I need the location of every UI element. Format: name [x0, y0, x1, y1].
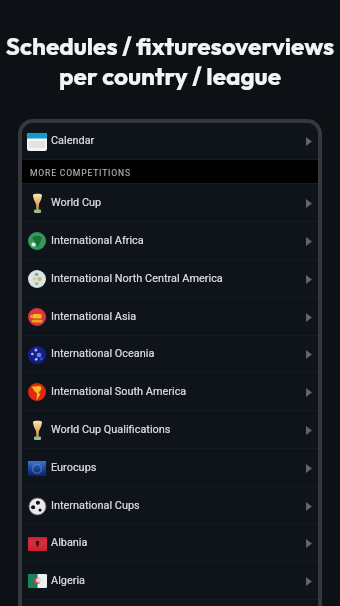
button[interactable]: Albania	[22, 525, 318, 562]
staticText: Algeria	[51, 574, 86, 587]
staticText: International Oceania	[51, 347, 155, 360]
button[interactable]: International Africa	[22, 222, 318, 260]
staticText: World Cup Qualifications	[51, 423, 171, 436]
staticText: Calendar	[51, 134, 95, 147]
staticText: International Cups	[51, 499, 140, 512]
button[interactable]: International Cups	[22, 487, 318, 525]
staticText: Eurocups	[51, 461, 97, 474]
staticText: International North Central America	[51, 272, 223, 285]
button[interactable]: Calendar	[22, 123, 318, 160]
staticText: International Africa	[51, 234, 144, 247]
button[interactable]: International Asia	[22, 298, 318, 336]
button[interactable]: International North Central America	[22, 260, 318, 298]
button[interactable]: World Cup	[22, 184, 318, 222]
staticText: Albania	[51, 536, 88, 549]
staticText: World Cup	[51, 196, 102, 209]
button[interactable]: International Oceania	[22, 336, 318, 373]
staticText: Schedules / fixturesoverviews per countr…	[0, 31, 340, 91]
button[interactable]: International South America	[22, 373, 318, 411]
staticText: International Asia	[51, 310, 137, 323]
staticText: MORE COMPETITIONS	[30, 168, 131, 178]
button[interactable]: World Cup Qualifications	[22, 411, 318, 449]
button[interactable]: Algeria	[22, 562, 318, 600]
button[interactable]: Eurocups	[22, 449, 318, 487]
staticText: International South America	[51, 385, 187, 398]
